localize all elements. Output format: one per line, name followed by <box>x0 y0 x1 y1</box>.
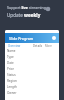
staticText: Price <box>7 67 14 71</box>
staticText: Type <box>7 55 14 59</box>
staticText: Slide Program <box>9 36 34 41</box>
staticText: Update weekly <box>7 12 41 18</box>
button[interactable]: Price <box>7 66 59 72</box>
button[interactable]: Date <box>7 60 59 66</box>
staticText: More <box>45 44 52 48</box>
button[interactable]: More <box>44 44 53 48</box>
button[interactable]: Status <box>7 72 59 78</box>
staticText: Status <box>7 73 16 77</box>
button[interactable]: Region <box>7 78 59 84</box>
button[interactable]: Owner <box>7 90 59 96</box>
staticText: Overview <box>8 44 21 48</box>
button[interactable]: Type <box>7 54 59 60</box>
staticText: Date <box>7 61 14 65</box>
button[interactable]: Overview <box>7 44 22 48</box>
staticText: Region <box>7 79 17 83</box>
button[interactable]: Name <box>7 48 59 54</box>
button[interactable]: Length <box>7 84 59 90</box>
button[interactable]: Details <box>32 44 43 48</box>
staticText: Owner <box>7 91 17 95</box>
staticText: Support live streaming <box>7 5 46 10</box>
staticText: Details <box>33 44 42 48</box>
button[interactable]: Favorite <box>45 6 51 12</box>
staticText: Name <box>7 49 16 53</box>
staticText: Length <box>7 85 17 89</box>
